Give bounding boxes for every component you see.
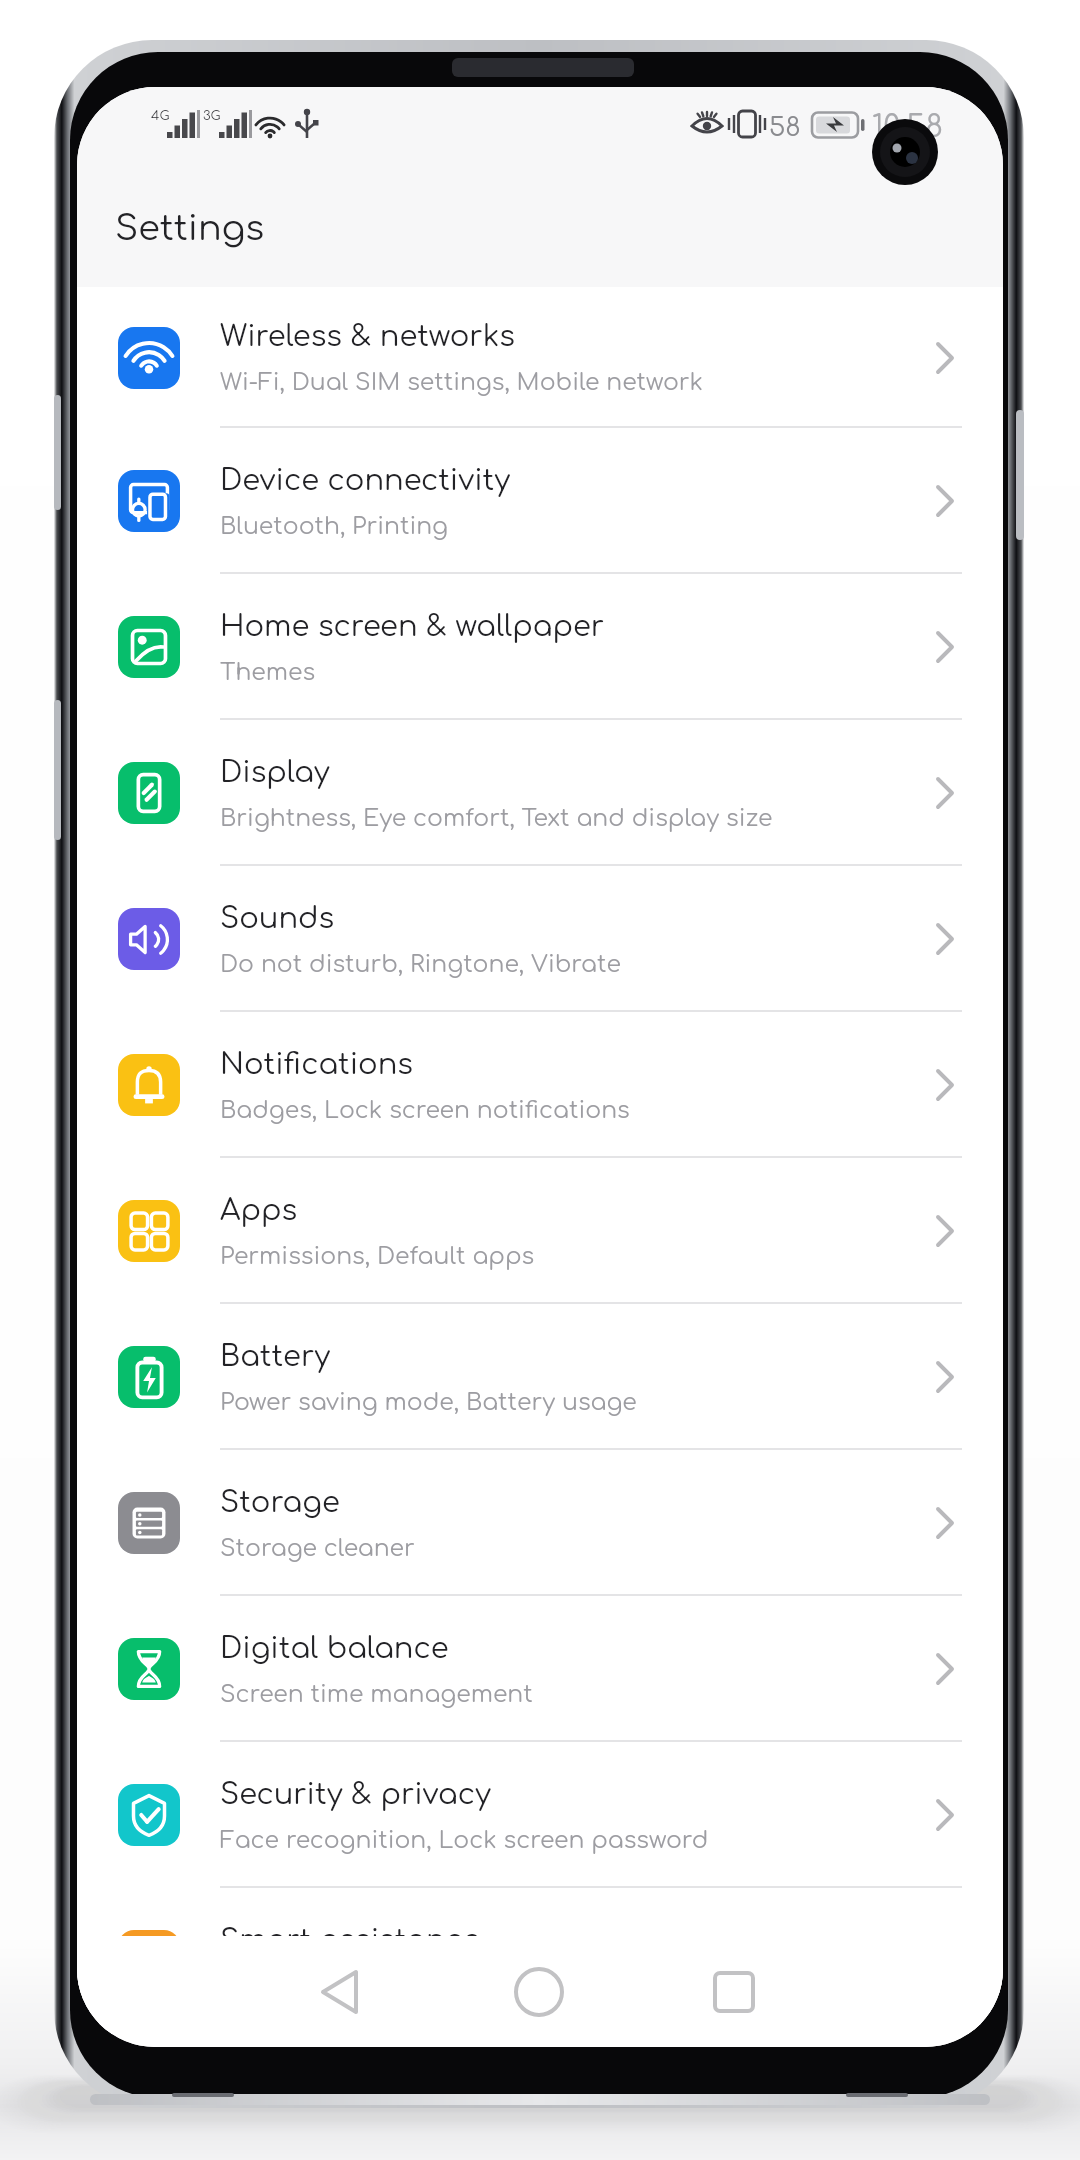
- staticText: Storage: [220, 1486, 340, 1518]
- staticText: Security & privacy: [220, 1778, 491, 1810]
- staticText: Permissions, Default apps: [220, 1243, 535, 1269]
- button[interactable]: Sounds: [77, 866, 1003, 1012]
- button[interactable]: Battery: [77, 1304, 1003, 1450]
- staticText: Wi-Fi, Dual SIM settings, Mobile network: [220, 369, 704, 395]
- staticText: 58: [769, 113, 801, 142]
- staticText: Storage cleaner: [220, 1535, 415, 1561]
- staticText: 3G: [203, 109, 221, 123]
- staticText: Themes: [220, 659, 316, 685]
- button[interactable]: Storage: [77, 1450, 1003, 1596]
- staticText: Notifications: [220, 1048, 413, 1080]
- staticText: Accessibility, Motion control: [220, 1973, 564, 1999]
- staticText: Device connectivity: [220, 464, 511, 496]
- staticText: Power saving mode, Battery usage: [220, 1389, 637, 1415]
- button[interactable]: Apps: [77, 1158, 1003, 1304]
- staticText: Wireless & networks: [220, 320, 515, 352]
- button[interactable]: Notifications: [77, 1012, 1003, 1158]
- staticText: Smart assistance: [220, 1924, 481, 1956]
- staticText: Badges, Lock screen notifications: [220, 1097, 630, 1123]
- button[interactable]: Home: [491, 1944, 587, 2040]
- button[interactable]: Digital balance: [77, 1596, 1003, 1742]
- staticText: Settings: [115, 209, 265, 248]
- button[interactable]: Smart assistance: [77, 1888, 1003, 2034]
- button[interactable]: Device connectivity: [77, 428, 1003, 574]
- staticText: Display: [220, 756, 330, 788]
- button[interactable]: Wireless & networks: [77, 287, 1003, 428]
- staticText: Apps: [220, 1194, 298, 1226]
- staticText: Screen time management: [220, 1681, 533, 1707]
- staticText: 4G: [151, 109, 170, 123]
- staticText: Bluetooth, Printing: [220, 513, 449, 539]
- button[interactable]: Back: [293, 1944, 389, 2040]
- button[interactable]: Home screen & wallpaper: [77, 574, 1003, 720]
- button[interactable]: Recent apps: [686, 1944, 782, 2040]
- staticText: Digital balance: [220, 1632, 449, 1664]
- staticText: 10:58: [872, 111, 943, 144]
- staticText: Brightness, Eye comfort, Text and displa…: [220, 805, 773, 831]
- staticText: Home screen & wallpaper: [220, 610, 605, 642]
- staticText: Face recognition, Lock screen password: [220, 1827, 709, 1853]
- staticText: Do not disturb, Ringtone, Vibrate: [220, 951, 621, 977]
- button[interactable]: Security & privacy: [77, 1742, 1003, 1888]
- button[interactable]: Display: [77, 720, 1003, 866]
- staticText: Sounds: [220, 902, 335, 934]
- staticText: Battery: [220, 1340, 331, 1372]
